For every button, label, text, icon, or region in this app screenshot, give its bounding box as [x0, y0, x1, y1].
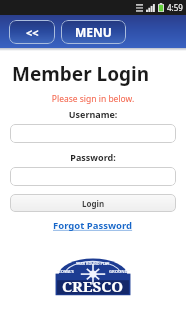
staticText: YEAR ROUND PLAY	[76, 261, 110, 266]
staticText: CRESCO	[62, 276, 124, 296]
staticText: "IOWA'S	[57, 269, 74, 275]
button[interactable]	[10, 167, 176, 186]
staticText: Username:	[0, 108, 186, 120]
staticText: Password:	[0, 151, 186, 163]
staticText: MENU	[75, 24, 112, 40]
staticText: Please sign in below.	[0, 93, 186, 105]
button[interactable]	[10, 124, 176, 143]
button[interactable]: MENU	[61, 20, 126, 44]
staticText: 4:59	[167, 2, 183, 13]
staticText: GROUND"	[109, 269, 130, 275]
staticText: Login	[82, 198, 105, 209]
staticText: <<	[26, 25, 39, 40]
button[interactable]: Forgot Password	[0, 219, 186, 232]
button[interactable]: Login	[10, 194, 176, 212]
staticText: Forgot Password	[53, 219, 133, 232]
staticText: Member Login	[12, 61, 150, 87]
button[interactable]: Back	[9, 20, 55, 44]
